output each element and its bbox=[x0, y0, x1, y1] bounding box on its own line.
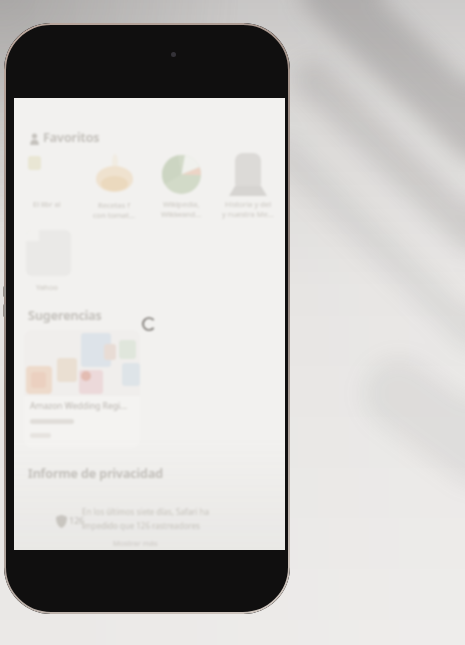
staticText: 126 bbox=[69, 514, 85, 526]
staticText: con tomat... bbox=[93, 210, 135, 220]
staticText: Mostrar más bbox=[113, 538, 158, 548]
staticText: Wikiwand... bbox=[161, 209, 202, 219]
button[interactable]: Amazon Wedding Regi... bbox=[24, 330, 140, 448]
staticText: Historia y del bbox=[225, 199, 272, 209]
staticText: Yahoo bbox=[36, 282, 58, 292]
staticText: impedido que 126 rastreadores bbox=[82, 520, 200, 531]
staticText: En los últimos siete días, Safari ha bbox=[82, 506, 209, 517]
staticText: Wikipedia, bbox=[163, 199, 200, 209]
staticText: Favoritos bbox=[43, 129, 100, 146]
button[interactable] bbox=[28, 156, 41, 170]
staticText: y nuestra Me... bbox=[222, 209, 274, 219]
staticText: El libr al bbox=[33, 199, 61, 209]
staticText: Informe de privacidad bbox=[28, 465, 164, 482]
staticText: Amazon Wedding Regi... bbox=[30, 400, 127, 412]
staticText: Sugerencias bbox=[28, 307, 102, 324]
staticText: Recetas f bbox=[98, 200, 130, 210]
